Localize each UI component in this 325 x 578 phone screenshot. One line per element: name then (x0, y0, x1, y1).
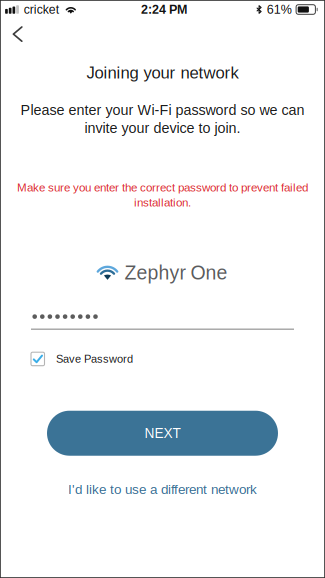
staticText: Save Password (56, 353, 133, 365)
staticText: invite your device to join. (84, 120, 240, 136)
button[interactable]: NEXT (47, 411, 278, 456)
staticText: 2:24 PM (141, 2, 187, 16)
button[interactable]: I'd like to use a different network (68, 482, 257, 497)
staticText: Make sure you enter the correct password… (17, 181, 308, 194)
staticText: Zephyr One (124, 262, 227, 284)
button[interactable]: Save Password (31, 352, 133, 366)
button[interactable]: Back (0, 19, 43, 47)
staticText: NEXT (144, 425, 180, 441)
staticText: 61% (267, 2, 292, 16)
staticText: Please enter your Wi-Fi password so we c… (20, 102, 304, 118)
staticText: I'd like to use a different network (68, 482, 257, 497)
staticText: cricket (24, 3, 59, 16)
staticText: installation. (134, 196, 191, 209)
staticText: Joining your network (86, 63, 238, 82)
